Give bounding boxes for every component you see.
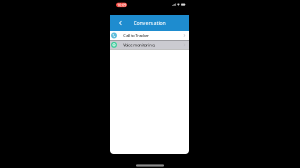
staticText: 10:09 <box>117 2 126 7</box>
staticText: Voice monitoring <box>123 42 155 48</box>
staticText: Conversation <box>133 19 165 27</box>
button[interactable]: Call to Tracker <box>110 31 189 40</box>
button[interactable]: Voice monitoring <box>110 40 189 49</box>
staticText: Call to Tracker <box>123 33 149 38</box>
button[interactable]: Back <box>110 15 131 31</box>
